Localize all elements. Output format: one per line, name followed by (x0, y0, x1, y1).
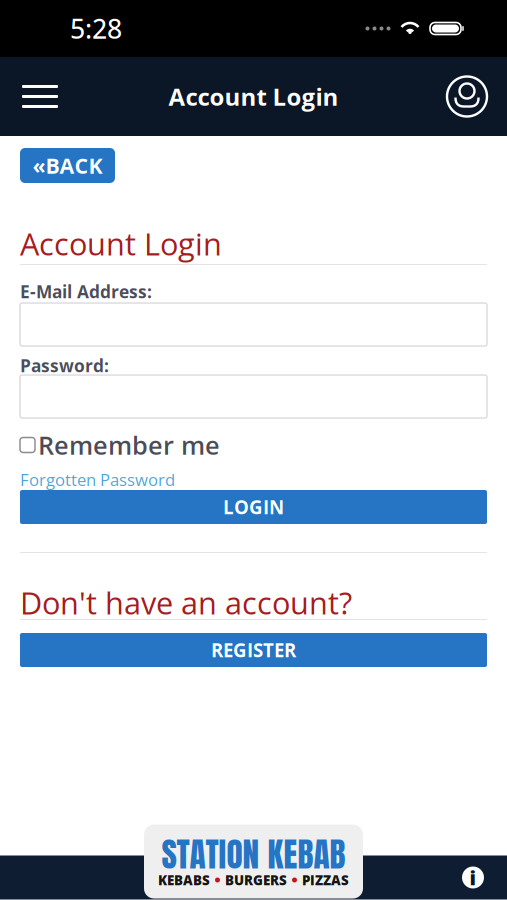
staticText: STATION KEBAB (161, 829, 345, 880)
staticText: «BACK (32, 151, 102, 180)
staticText: Account Login (168, 80, 338, 113)
staticText: i (469, 864, 476, 891)
button[interactable]: Information (451, 855, 495, 899)
staticText: PIZZAS (302, 871, 349, 889)
staticText: REGISTER (211, 637, 296, 663)
staticText: Password: (20, 354, 109, 377)
staticText: BURGERS (225, 871, 287, 889)
staticText: E-Mail Address: (20, 280, 152, 303)
staticText: Remember me (38, 428, 220, 462)
staticText: KEBABS (158, 871, 210, 889)
staticText: 5:28 (70, 10, 122, 47)
staticText: LOGIN (223, 494, 284, 520)
button[interactable]: LOGIN (20, 490, 487, 524)
button[interactable]: Account (437, 66, 497, 126)
button[interactable]: Forgotten Password (20, 472, 487, 487)
button[interactable]: Remember me (20, 433, 487, 457)
button[interactable]: Menu (10, 66, 70, 126)
staticText: Account Login (20, 223, 222, 264)
staticText: Forgotten Password (20, 468, 175, 491)
button[interactable]: «BACK (20, 148, 115, 183)
button[interactable]: REGISTER (20, 633, 487, 667)
staticText: Don't have an account? (20, 582, 352, 623)
